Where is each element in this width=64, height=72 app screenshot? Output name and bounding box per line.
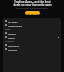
button[interactable]: Notifications bbox=[3, 23, 61, 27]
button[interactable]: Games bbox=[3, 31, 61, 35]
button[interactable]: My apps bbox=[3, 19, 61, 23]
button[interactable]: Payments bbox=[3, 43, 61, 47]
staticText: Account bbox=[5, 40, 14, 43]
staticText: at everyday low prices today bbox=[16, 6, 48, 9]
button[interactable]: Offers bbox=[3, 35, 61, 39]
staticText: Games bbox=[8, 32, 16, 35]
staticText: My apps bbox=[8, 20, 18, 23]
button[interactable]: Settings bbox=[3, 47, 61, 51]
staticText: deals on your favourite apps bbox=[13, 3, 52, 6]
staticText: Trading Apps—get the best bbox=[14, 0, 51, 3]
staticText: Notifications bbox=[8, 24, 23, 27]
button[interactable]: Get the app bbox=[25, 11, 40, 15]
staticText: Settings bbox=[8, 48, 18, 51]
staticText: Apps bbox=[5, 28, 11, 31]
staticText: Get the app bbox=[26, 12, 40, 15]
staticText: Offers bbox=[8, 36, 15, 39]
staticText: Payments bbox=[8, 44, 20, 47]
